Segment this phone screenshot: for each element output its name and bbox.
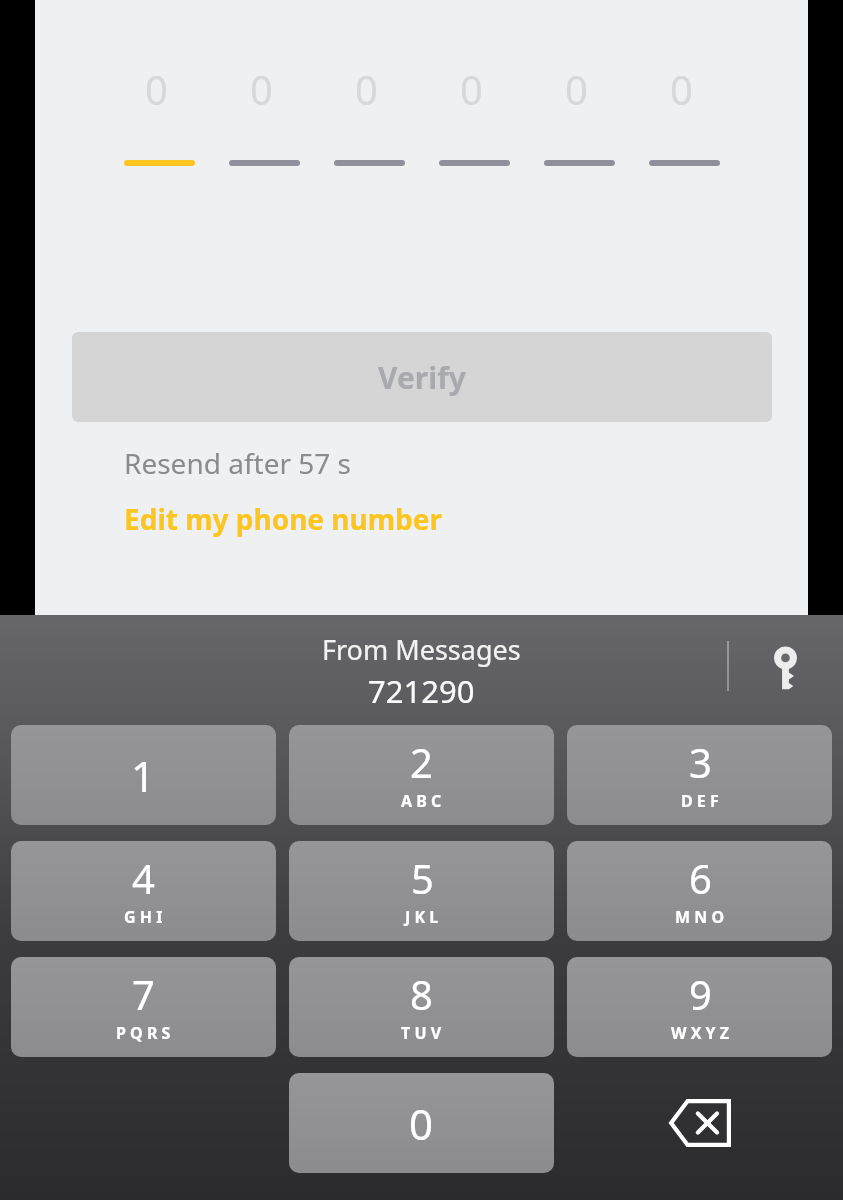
staticText: 0 bbox=[355, 62, 378, 116]
staticText: W X Y Z bbox=[671, 1022, 729, 1044]
button[interactable] bbox=[649, 160, 720, 166]
staticText: 7 bbox=[132, 967, 155, 1021]
staticText: From Messages bbox=[322, 631, 521, 668]
button[interactable]: Delete bbox=[567, 1073, 832, 1173]
button[interactable]: 4 bbox=[11, 841, 276, 941]
staticText: Resend after 57 s bbox=[124, 444, 352, 482]
staticText: J K L bbox=[405, 906, 439, 928]
staticText: Edit my phone number bbox=[124, 500, 442, 538]
staticText: T U V bbox=[401, 1022, 442, 1044]
button[interactable]: 8 bbox=[289, 957, 554, 1057]
button[interactable]: 7 bbox=[11, 957, 276, 1057]
staticText: Verify bbox=[378, 357, 466, 398]
staticText: 2 bbox=[410, 735, 433, 789]
staticText: 1 bbox=[131, 747, 156, 804]
staticText: 5 bbox=[411, 851, 434, 905]
staticText: A B C bbox=[401, 790, 442, 812]
button[interactable]: Edit my phone number bbox=[124, 500, 442, 538]
staticText: 0 bbox=[460, 62, 483, 116]
staticText: D E F bbox=[681, 790, 719, 812]
staticText: 0 bbox=[409, 1095, 434, 1152]
button[interactable]: 3 bbox=[567, 725, 832, 825]
button[interactable]: 1 bbox=[11, 725, 276, 825]
button[interactable]: 9 bbox=[567, 957, 832, 1057]
staticText: M N O bbox=[675, 906, 725, 928]
staticText: 0 bbox=[670, 62, 693, 116]
button[interactable] bbox=[124, 160, 195, 166]
staticText: 721290 bbox=[368, 670, 475, 712]
staticText: 3 bbox=[689, 735, 712, 789]
button[interactable]: Password key bbox=[758, 637, 820, 699]
staticText: 4 bbox=[132, 851, 155, 905]
staticText: 0 bbox=[145, 62, 168, 116]
button[interactable] bbox=[229, 160, 300, 166]
button[interactable] bbox=[544, 160, 615, 166]
button[interactable]: 0 bbox=[289, 1073, 554, 1173]
staticText: 0 bbox=[565, 62, 588, 116]
staticText: 9 bbox=[689, 967, 712, 1021]
button[interactable]: Verify bbox=[72, 332, 772, 422]
button[interactable] bbox=[334, 160, 405, 166]
button[interactable]: 5 bbox=[289, 841, 554, 941]
staticText: 8 bbox=[410, 967, 433, 1021]
staticText: 6 bbox=[689, 851, 712, 905]
staticText: P Q R S bbox=[116, 1022, 171, 1044]
button[interactable] bbox=[439, 160, 510, 166]
staticText: 0 bbox=[250, 62, 273, 116]
button[interactable]: 6 bbox=[567, 841, 832, 941]
staticText: G H I bbox=[124, 906, 163, 928]
button[interactable]: 2 bbox=[289, 725, 554, 825]
